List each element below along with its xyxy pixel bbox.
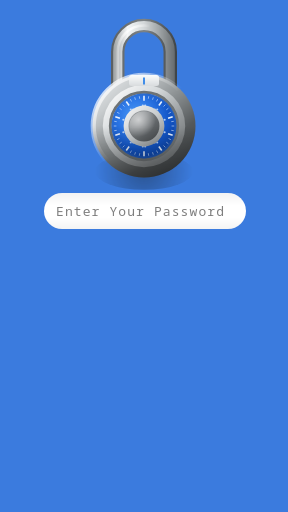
other: Combination padlock bbox=[0, 0, 288, 512]
button[interactable]: Enter Your Password bbox=[44, 193, 246, 229]
staticText: Enter Your Password bbox=[56, 202, 226, 220]
